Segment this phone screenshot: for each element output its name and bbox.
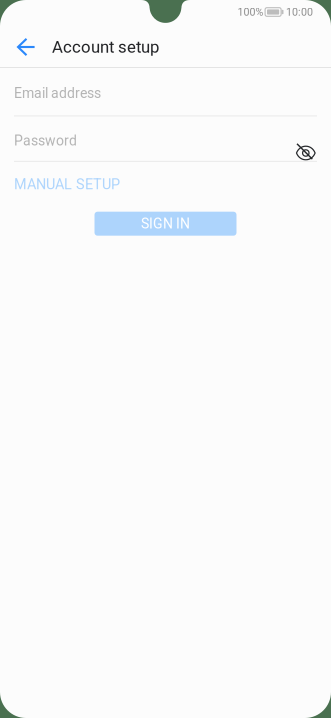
staticText: MANUAL SETUP <box>14 176 120 193</box>
button[interactable]: SIGN IN <box>94 212 236 236</box>
staticText: Password <box>14 132 77 149</box>
staticText: Email address <box>14 85 101 101</box>
button[interactable]: Show password <box>295 111 317 167</box>
staticText: 10:00 <box>286 6 313 18</box>
button[interactable]: MANUAL SETUP <box>14 162 120 202</box>
staticText: SIGN IN <box>141 215 190 232</box>
staticText: Account setup <box>52 37 159 57</box>
button[interactable]: Back <box>9 23 43 69</box>
staticText: 100% <box>238 6 264 18</box>
